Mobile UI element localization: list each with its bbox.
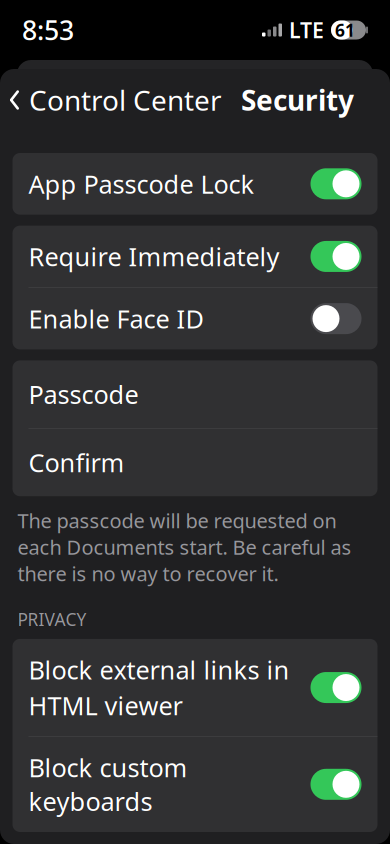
staticText: Block external links in bbox=[28, 653, 289, 686]
staticText: The passcode will be requested on each D… bbox=[17, 507, 351, 587]
button[interactable]: App Passcode Lock bbox=[12, 153, 377, 215]
staticText: 61 bbox=[335, 18, 355, 41]
staticText: LTE bbox=[289, 16, 324, 44]
button[interactable]: Confirm bbox=[12, 429, 377, 496]
staticText: Security bbox=[241, 81, 354, 119]
staticText: Control Center bbox=[29, 81, 222, 119]
staticText: HTML viewer bbox=[28, 688, 182, 722]
staticText: Enable Face ID bbox=[28, 302, 203, 335]
button[interactable]: Block external links in bbox=[12, 639, 377, 736]
staticText: Block custom keyboards bbox=[28, 751, 187, 818]
button[interactable]: Passcode bbox=[12, 360, 377, 428]
button[interactable]: Enable Face ID bbox=[12, 288, 377, 349]
button[interactable]: Block custom keyboards bbox=[12, 737, 377, 832]
button[interactable]: Control Center bbox=[8, 73, 228, 127]
button[interactable]: Require Immediately bbox=[12, 226, 377, 287]
staticText: Passcode bbox=[28, 377, 138, 411]
staticText: 8:53 bbox=[22, 12, 74, 48]
staticText: Require Immediately bbox=[28, 240, 279, 273]
staticText: PRIVACY bbox=[17, 608, 86, 631]
staticText: App Passcode Lock bbox=[28, 167, 254, 201]
staticText: Confirm bbox=[28, 446, 124, 479]
